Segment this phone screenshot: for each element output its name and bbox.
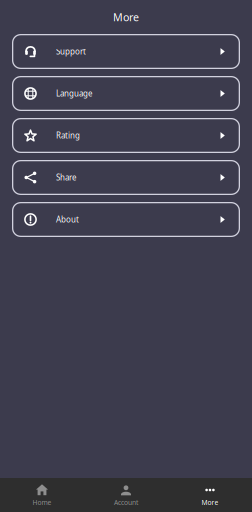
staticText: Support: [56, 46, 86, 57]
staticText: Rating: [56, 130, 80, 141]
staticText: Language: [56, 88, 93, 99]
button[interactable]: More: [168, 478, 252, 512]
button[interactable]: Support: [12, 34, 240, 69]
staticText: Share: [56, 172, 77, 183]
button[interactable]: About: [12, 202, 240, 237]
button[interactable]: Rating: [12, 118, 240, 153]
staticText: Account: [114, 498, 138, 507]
staticText: Home: [32, 498, 51, 507]
staticText: About: [56, 214, 79, 225]
button[interactable]: Language: [12, 76, 240, 111]
button[interactable]: Account: [84, 478, 168, 512]
staticText: More: [201, 498, 218, 507]
staticText: More: [113, 10, 139, 24]
button[interactable]: Home: [0, 478, 84, 512]
button[interactable]: Share: [12, 160, 240, 195]
